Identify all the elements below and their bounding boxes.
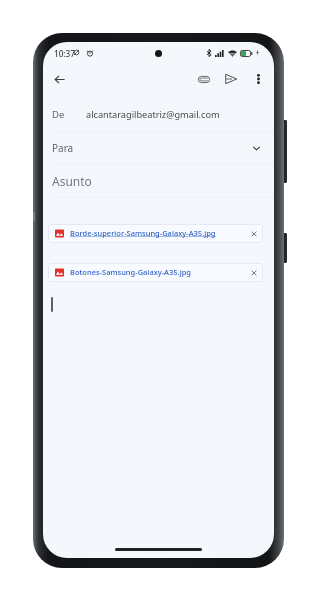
button[interactable]: Borde-superior-Samsung-Galaxy-A35.jpg: [48, 224, 263, 243]
button[interactable]: Para: [43, 132, 274, 164]
staticText: De: [52, 108, 65, 121]
staticText: alcantaragilbeatriz@gmail.com: [86, 108, 220, 121]
button[interactable]: Back: [48, 68, 70, 90]
button[interactable]: Botones-Samsung-Galaxy-A35.jpg: [48, 263, 263, 282]
button[interactable]: De: [43, 99, 274, 130]
button[interactable]: Attach file: [193, 68, 215, 90]
staticText: 10:37: [54, 48, 75, 59]
button[interactable]: Remove attachment: [247, 227, 261, 241]
staticText: Asunto: [52, 173, 92, 189]
staticText: Para: [52, 141, 74, 155]
button[interactable]: Asunto: [43, 165, 274, 197]
button[interactable]: Send: [220, 68, 242, 90]
staticText: Borde-superior-Samsung-Galaxy-A35.jpg: [70, 228, 216, 238]
staticText: Botones-Samsung-Galaxy-A35.jpg: [70, 267, 191, 277]
button[interactable]: More options: [247, 68, 269, 90]
button[interactable]: Remove attachment: [247, 266, 261, 280]
